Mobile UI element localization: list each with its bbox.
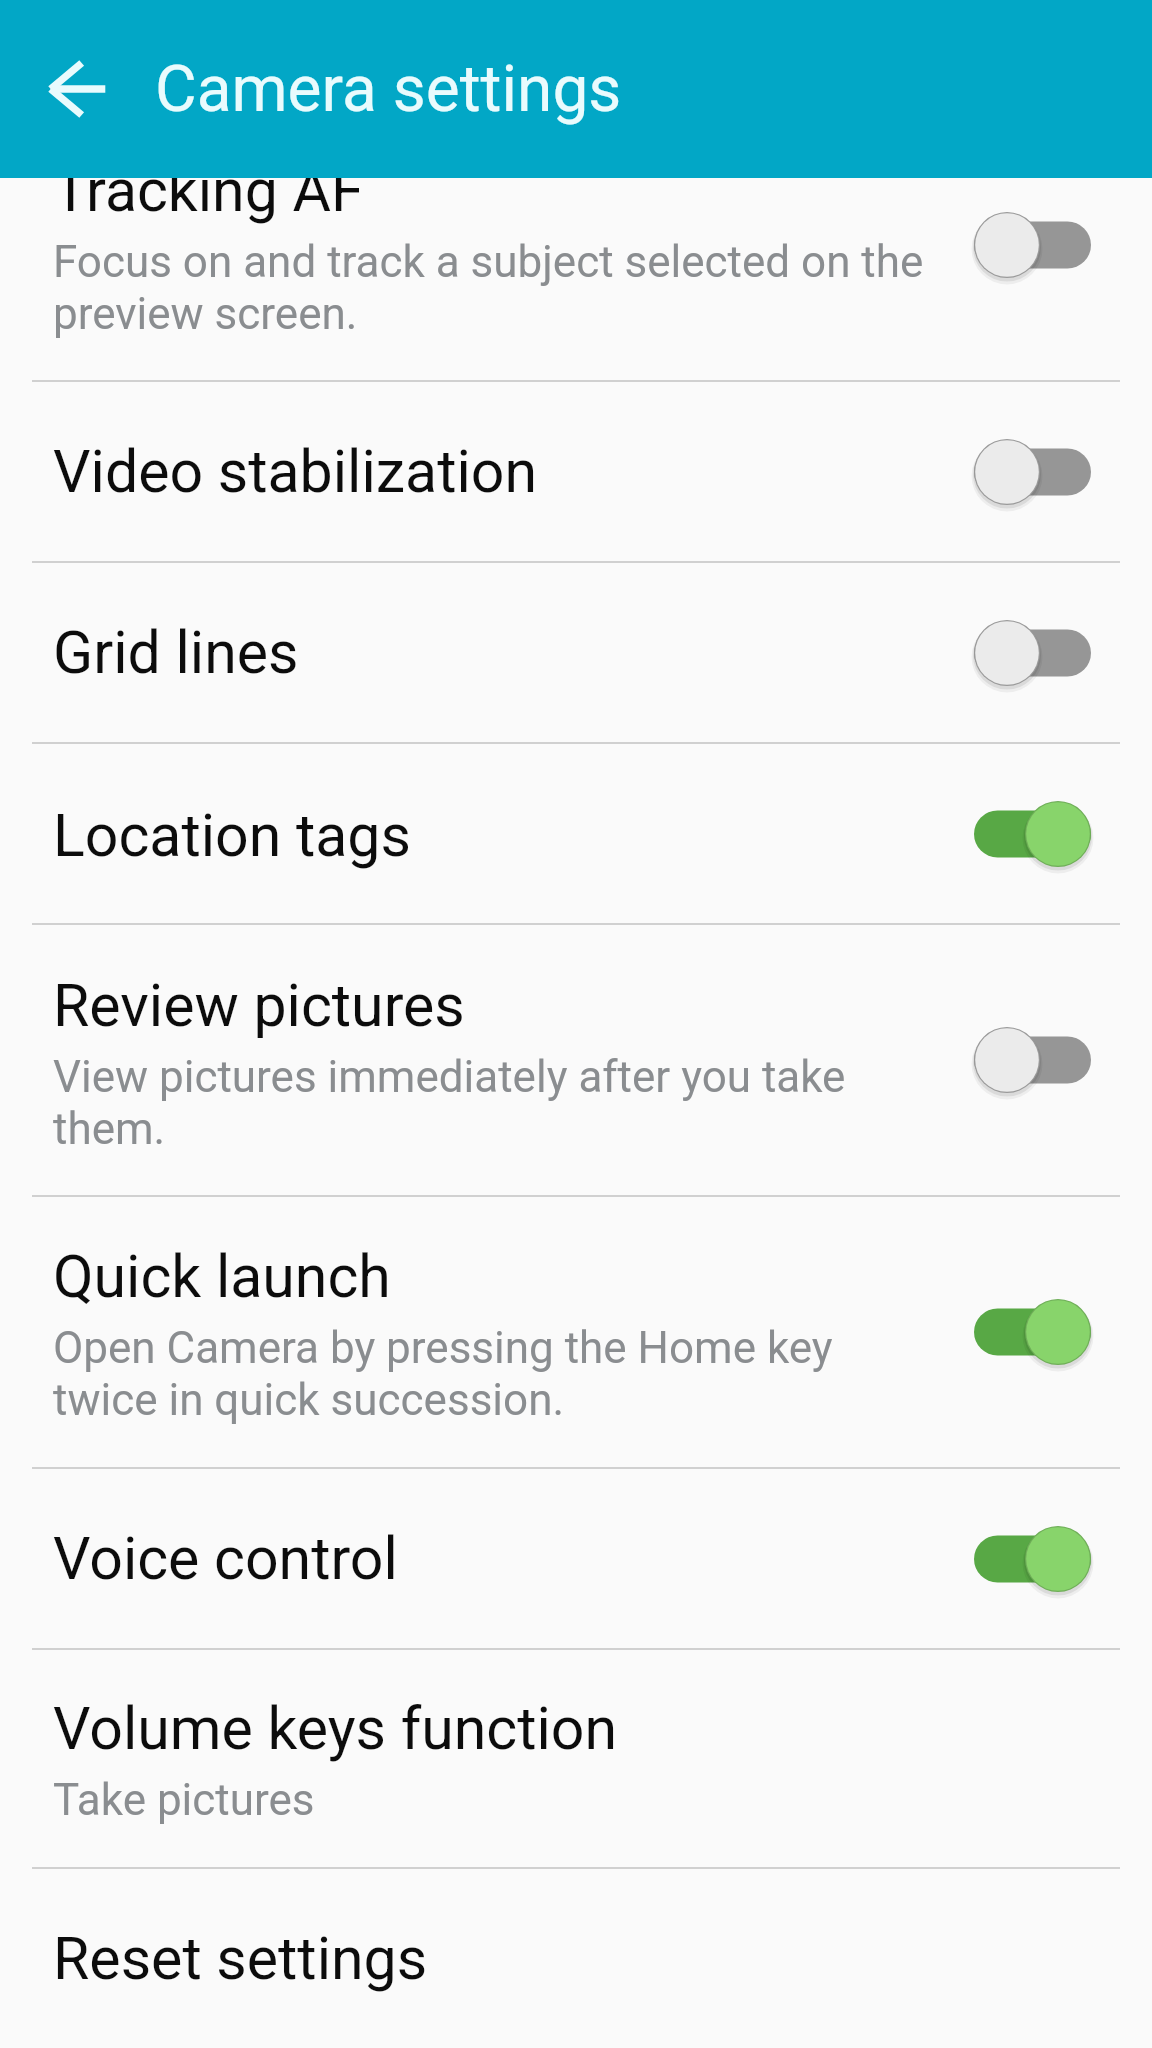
button[interactable]: On <box>974 1292 1091 1372</box>
button[interactable]: Off <box>974 613 1091 693</box>
staticText: Volume keys function <box>53 1694 618 1763</box>
staticText: Voice control <box>53 1524 398 1593</box>
button[interactable]: Back <box>23 34 133 144</box>
staticText: Reset settings <box>53 1924 428 1993</box>
button[interactable]: Video stabilization <box>0 382 1152 561</box>
staticText: View pictures immediately after you take… <box>53 1051 928 1155</box>
button[interactable]: Grid lines <box>0 563 1152 742</box>
button[interactable]: Reset settings <box>0 1869 1152 2048</box>
staticText: Location tags <box>53 801 411 870</box>
button[interactable]: Review pictures <box>0 925 1152 1195</box>
staticText: Review pictures <box>53 971 465 1040</box>
button[interactable]: Quick launch <box>0 1197 1152 1467</box>
button[interactable]: Volume keys function <box>0 1650 1152 1867</box>
staticText: Open Camera by pressing the Home key twi… <box>53 1322 928 1426</box>
staticText: Quick launch <box>53 1242 391 1311</box>
staticText: Video stabilization <box>53 437 538 506</box>
staticText: Grid lines <box>53 618 299 687</box>
staticText: Take pictures <box>53 1774 315 1826</box>
staticText: Tracking AF <box>53 156 364 225</box>
button[interactable]: Off <box>974 205 1091 285</box>
button[interactable]: On <box>974 1519 1091 1599</box>
button[interactable]: Voice control <box>0 1469 1152 1648</box>
button[interactable]: On <box>974 794 1091 874</box>
button[interactable]: Off <box>974 1020 1091 1100</box>
staticText: Camera settings <box>155 52 622 127</box>
staticText: Focus on and track a subject selected on… <box>53 236 928 340</box>
button[interactable]: Off <box>974 432 1091 512</box>
button[interactable]: Location tags <box>0 744 1152 923</box>
button[interactable]: Tracking AF <box>0 110 1152 380</box>
